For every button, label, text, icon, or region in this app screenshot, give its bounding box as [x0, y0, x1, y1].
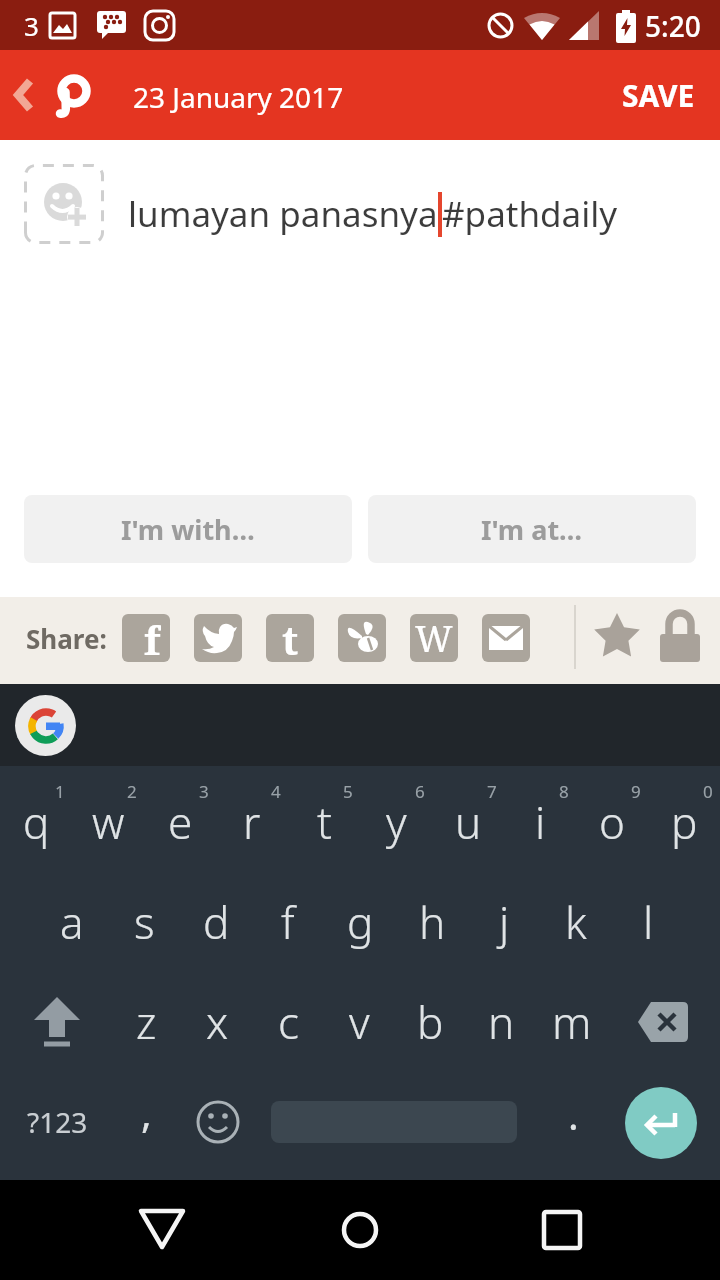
button[interactable]	[482, 614, 530, 662]
button[interactable]: e	[144, 772, 216, 872]
staticText: 9	[631, 780, 641, 803]
staticText: 6	[415, 780, 425, 803]
staticText: #pathdaily	[442, 190, 618, 238]
button[interactable]: s	[108, 872, 180, 972]
staticText: l	[643, 892, 654, 952]
button[interactable]: d	[180, 872, 252, 972]
button[interactable]	[520, 1190, 604, 1270]
staticText: w	[92, 792, 125, 852]
button[interactable]: q	[0, 772, 72, 872]
staticText: q	[23, 792, 50, 852]
button[interactable]: n	[465, 972, 537, 1072]
staticText: m	[552, 992, 592, 1052]
button[interactable]: b	[394, 972, 466, 1072]
button[interactable]: SAVE	[600, 64, 716, 126]
button[interactable]: I'm with…	[24, 495, 352, 563]
button[interactable]	[182, 1072, 254, 1172]
staticText: 5	[343, 780, 353, 803]
button[interactable]	[338, 614, 386, 662]
staticText: b	[417, 992, 444, 1052]
button[interactable]: I'm at…	[368, 495, 696, 563]
button[interactable]: W	[410, 614, 458, 662]
button[interactable]	[24, 164, 104, 244]
button[interactable]	[318, 1190, 402, 1270]
staticText: lumayan panasnya	[128, 190, 438, 238]
button[interactable]: z	[110, 972, 182, 1072]
button[interactable]: t	[288, 772, 360, 872]
staticText: e	[168, 792, 193, 852]
button[interactable]: .	[537, 1072, 609, 1172]
button[interactable]: c	[252, 972, 324, 1072]
button[interactable]	[194, 614, 242, 662]
button[interactable]	[15, 695, 76, 756]
button[interactable]: ?123	[12, 1072, 102, 1172]
staticText: I'm at…	[481, 511, 583, 548]
staticText: 2	[127, 780, 137, 803]
staticText: a	[60, 892, 84, 952]
button[interactable]	[625, 1087, 697, 1159]
button[interactable]	[12, 972, 102, 1072]
staticText: 1	[55, 780, 65, 803]
staticText: j	[499, 892, 510, 952]
staticText: c	[278, 992, 299, 1052]
staticText: f	[281, 892, 295, 952]
staticText: o	[599, 792, 625, 852]
staticText: r	[243, 792, 261, 852]
button[interactable]: h	[396, 872, 468, 972]
staticText: t	[282, 614, 299, 660]
staticText: t	[317, 792, 332, 852]
staticText: i	[535, 792, 546, 852]
button[interactable]: k	[540, 872, 612, 972]
button[interactable]: t	[266, 614, 314, 662]
button[interactable]: o	[576, 772, 648, 872]
button[interactable]: w	[72, 772, 144, 872]
button[interactable]	[254, 1072, 534, 1172]
staticText: g	[347, 892, 374, 952]
staticText: 5:20	[645, 7, 701, 45]
button[interactable]: i	[504, 772, 576, 872]
button[interactable]: x	[181, 972, 253, 1072]
button[interactable]: y	[360, 772, 432, 872]
button[interactable]: l	[612, 872, 684, 972]
button[interactable]	[593, 611, 641, 661]
staticText: x	[206, 992, 229, 1052]
button[interactable]: r	[216, 772, 288, 872]
staticText: v	[349, 992, 370, 1052]
button[interactable]	[658, 609, 702, 663]
staticText: Share:	[26, 621, 107, 656]
staticText: p	[671, 792, 698, 852]
staticText: 3	[199, 780, 209, 803]
staticText: h	[419, 892, 446, 952]
button[interactable]: v	[323, 972, 395, 1072]
staticText: 8	[559, 780, 569, 803]
button[interactable]: p	[648, 772, 720, 872]
staticText: k	[565, 892, 587, 952]
staticText: n	[488, 992, 515, 1052]
staticText: 0	[703, 780, 713, 803]
staticText: 7	[487, 780, 497, 803]
staticText: SAVE	[622, 75, 695, 116]
staticText: ?123	[27, 1103, 88, 1141]
button[interactable]: g	[324, 872, 396, 972]
staticText: s	[134, 892, 155, 952]
staticText: 3	[24, 8, 39, 43]
staticText: d	[203, 892, 230, 952]
button[interactable]: u	[432, 772, 504, 872]
button[interactable]	[4, 68, 48, 122]
button[interactable]	[618, 972, 708, 1072]
staticText: z	[136, 992, 157, 1052]
button[interactable]: m	[536, 972, 608, 1072]
staticText: u	[455, 792, 482, 852]
button[interactable]: ,	[110, 1072, 182, 1172]
staticText: I'm with…	[121, 511, 255, 548]
button[interactable]: j	[468, 872, 540, 972]
staticText: ,	[141, 1085, 152, 1139]
staticText: y	[386, 792, 407, 852]
staticText: f	[144, 614, 161, 660]
button[interactable]: f	[122, 614, 170, 662]
staticText: 4	[271, 780, 281, 803]
button[interactable]: f	[252, 872, 324, 972]
staticText: W	[415, 614, 453, 662]
button[interactable]	[120, 1190, 204, 1270]
button[interactable]: a	[36, 872, 108, 972]
